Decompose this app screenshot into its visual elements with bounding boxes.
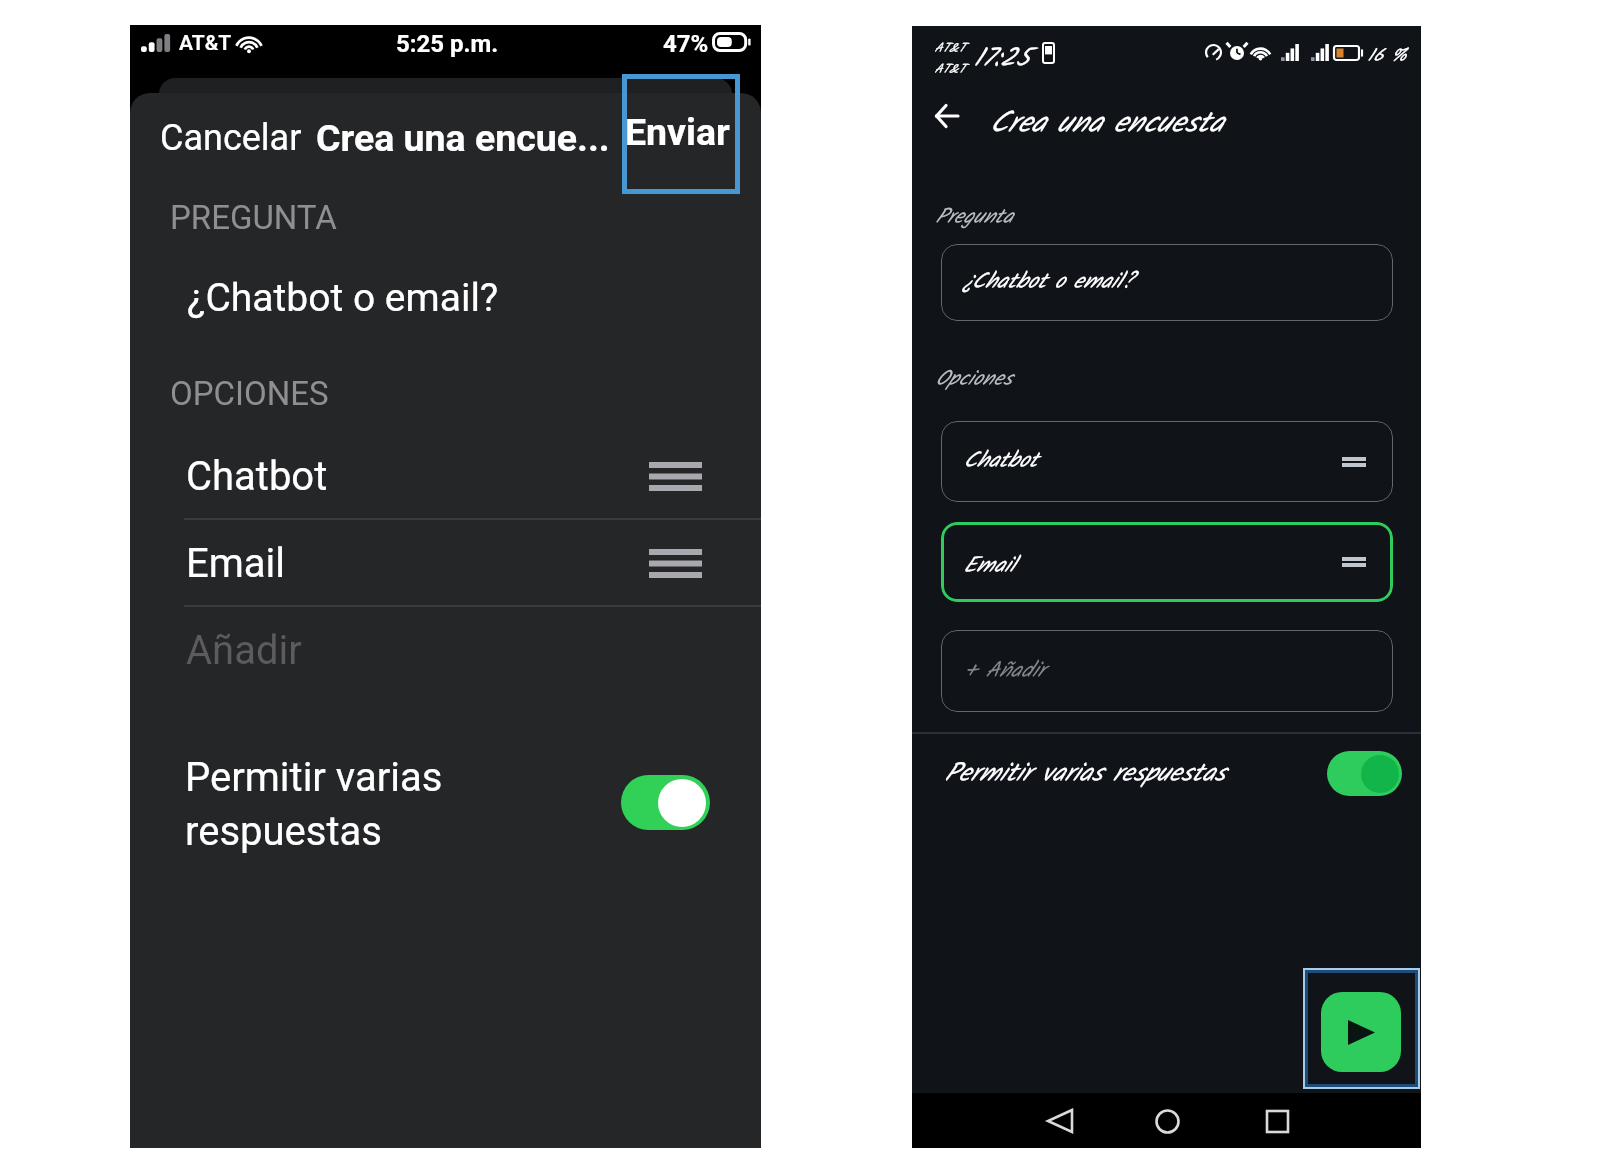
other: Reorder xyxy=(1342,557,1366,567)
staticText: Email xyxy=(186,540,286,587)
staticText: Chatbot xyxy=(186,453,328,500)
staticText: 16 % xyxy=(1367,42,1406,71)
staticText: ¿Chatbot o email? xyxy=(963,265,1133,300)
button[interactable]: Email xyxy=(130,520,761,607)
button[interactable]: Permitir varias respuestas xyxy=(130,731,761,891)
staticText: PREGUNTA xyxy=(170,198,337,237)
button[interactable]: Allow multiple answers xyxy=(1327,751,1402,796)
button[interactable]: + Añadir xyxy=(941,630,1393,712)
button[interactable]: Cancelar xyxy=(148,105,314,171)
staticText: 17:25 xyxy=(973,38,1029,79)
staticText: Chatbot xyxy=(963,444,1037,479)
staticText: 47% xyxy=(663,30,709,58)
staticText: Email xyxy=(963,549,1015,584)
staticText: Crea una encuesta xyxy=(989,100,1223,148)
staticText: + Añadir xyxy=(963,654,1044,689)
staticText: Cancelar xyxy=(160,117,302,159)
staticText: Pregunta xyxy=(935,201,1013,234)
button[interactable]: Allow multiple answers xyxy=(621,775,710,830)
staticText: ¿Chatbot o email? xyxy=(187,275,499,321)
staticText: Permitir varias respuestas xyxy=(185,754,455,855)
button[interactable]: ¿Chatbot o email? xyxy=(130,250,761,346)
other: Reorder xyxy=(1342,457,1366,467)
staticText: Añadir xyxy=(186,627,302,674)
staticText: Enviar xyxy=(625,110,730,154)
staticText: Crea una encue... xyxy=(316,116,610,160)
button[interactable]: Email xyxy=(941,522,1393,602)
button[interactable]: Back xyxy=(921,90,973,142)
staticText: AT&T xyxy=(934,59,965,80)
staticText: AT&T xyxy=(934,38,965,59)
button[interactable]: Enviar xyxy=(618,72,736,192)
button[interactable]: Send xyxy=(1321,992,1401,1072)
button[interactable]: Home xyxy=(1141,1095,1193,1147)
staticText: Permitir varias respuestas xyxy=(944,753,1225,794)
staticText: OPCIONES xyxy=(170,374,329,413)
staticText: 5:25 p.m. xyxy=(396,30,499,58)
button[interactable]: ¿Chatbot o email? xyxy=(941,244,1393,321)
button[interactable]: Recents xyxy=(1251,1095,1303,1147)
button[interactable]: Chatbot xyxy=(941,421,1393,502)
staticText: Opciones xyxy=(935,363,1012,396)
staticText: AT&T xyxy=(179,31,232,56)
button[interactable]: Añadir xyxy=(130,607,761,693)
button[interactable]: Chatbot xyxy=(130,432,761,520)
button[interactable]: Permitir varias respuestas xyxy=(912,734,1421,820)
button[interactable]: Back xyxy=(1034,1095,1086,1147)
